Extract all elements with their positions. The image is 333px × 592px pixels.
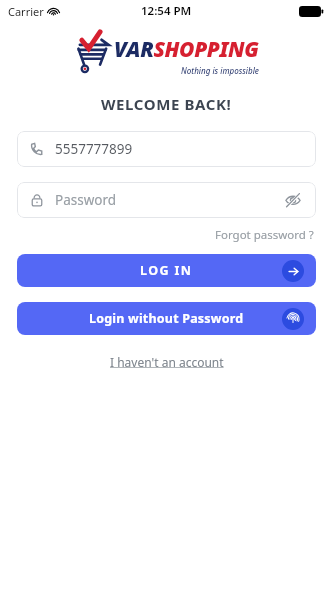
button[interactable]: I haven't an account — [106, 350, 228, 374]
staticText: 5557777899 — [55, 140, 133, 158]
staticText: I haven't an account — [110, 354, 224, 370]
button[interactable]: LOG IN — [17, 254, 316, 287]
staticText: Carrier — [8, 4, 44, 19]
staticText: VARSHOPPING — [114, 35, 259, 64]
button[interactable]: Login without Password — [17, 302, 316, 335]
staticText: Login without Password — [89, 310, 244, 327]
other: Log in — [288, 266, 299, 277]
staticText: 12:54 PM — [141, 3, 192, 19]
button[interactable]: Show password — [283, 190, 303, 210]
button[interactable]: Password — [17, 182, 316, 218]
button[interactable]: Forgot password ? — [213, 225, 316, 245]
staticText: Nothing is impossible — [181, 65, 259, 76]
staticText: WELCOME BACK! — [101, 94, 232, 114]
staticText: Forgot password ? — [215, 227, 314, 243]
staticText: Password — [55, 191, 283, 209]
button[interactable]: 5557777899 — [17, 131, 316, 167]
other: Fingerprint login — [287, 313, 299, 325]
staticText: LOG IN — [140, 262, 193, 279]
